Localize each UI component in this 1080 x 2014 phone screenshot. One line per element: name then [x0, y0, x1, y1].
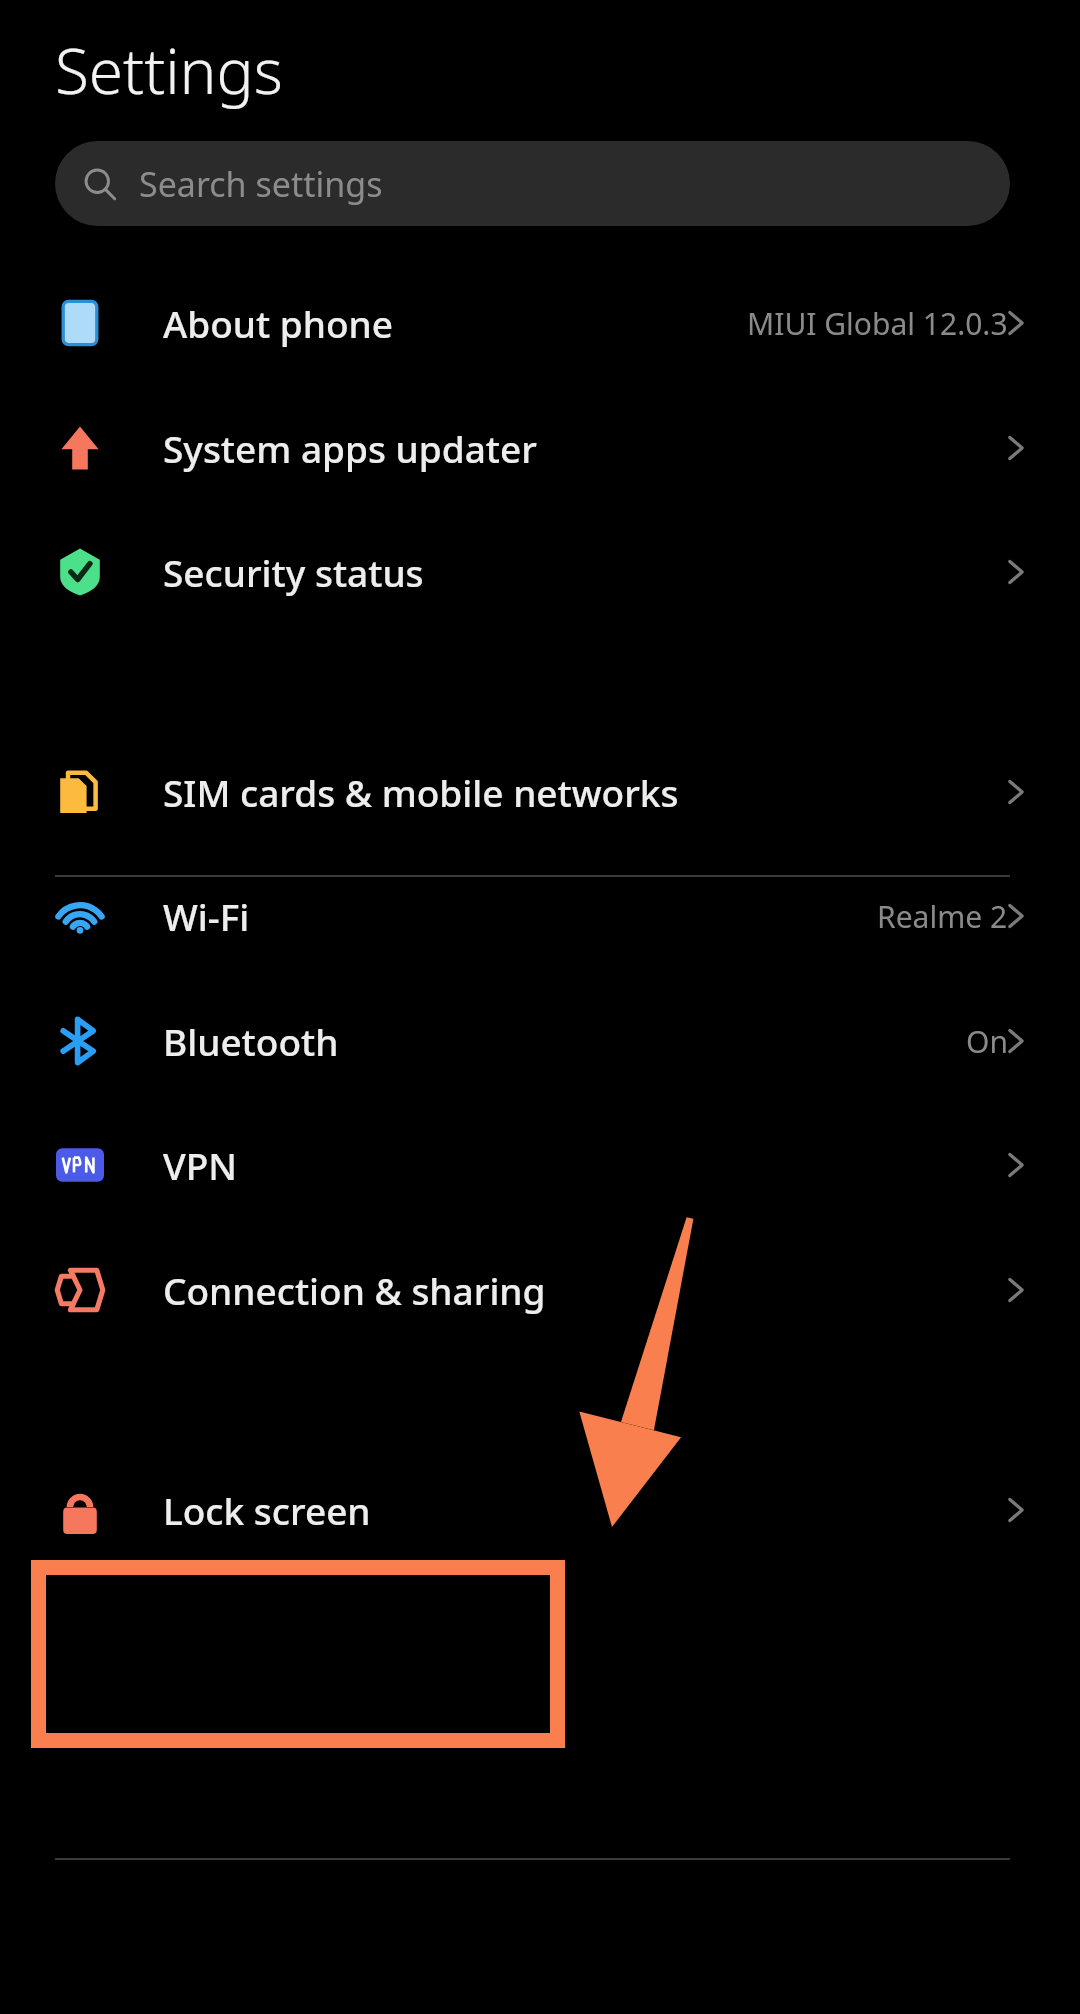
- button[interactable]: Lock screen: [0, 1450, 1080, 1570]
- staticText: SIM cards & mobile networks: [163, 767, 679, 817]
- staticText: Realme 2: [877, 896, 1008, 937]
- staticText: System apps updater: [163, 423, 537, 473]
- staticText: MIUI Global 12.0.3: [747, 303, 1008, 344]
- button[interactable]: Bluetooth: [0, 981, 1080, 1101]
- staticText: Bluetooth: [163, 1016, 339, 1066]
- staticText: Settings: [55, 28, 283, 112]
- button[interactable]: Search settings: [55, 141, 1010, 226]
- staticText: Search settings: [139, 161, 383, 207]
- button[interactable]: VPN: [0, 1105, 1080, 1225]
- staticText: Lock screen: [163, 1485, 371, 1535]
- button[interactable]: System apps updater: [0, 388, 1080, 508]
- staticText: Connection & sharing: [163, 1265, 546, 1315]
- staticText: About phone: [163, 298, 393, 348]
- button[interactable]: SIM cards & mobile networks: [0, 732, 1080, 852]
- button[interactable]: About phone: [0, 263, 1080, 383]
- button[interactable]: Connection & sharing: [0, 1230, 1080, 1350]
- staticText: VPN: [163, 1140, 238, 1190]
- button[interactable]: Wi-Fi: [0, 856, 1080, 976]
- staticText: Wi-Fi: [163, 891, 250, 941]
- staticText: Security status: [163, 547, 424, 597]
- button[interactable]: Security status: [0, 512, 1080, 632]
- staticText: On: [966, 1021, 1008, 1062]
